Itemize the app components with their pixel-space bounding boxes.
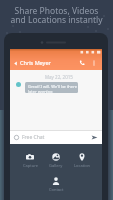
button[interactable]: Back [10, 58, 20, 68]
button[interactable]: Contact [43, 168, 69, 192]
staticText: Chris Meyer [20, 59, 51, 66]
staticText: Great! I will. We'll be there later even… [28, 84, 77, 93]
staticText: Free Chat [22, 134, 45, 141]
staticText: Location [74, 163, 91, 168]
staticText: Capture [23, 163, 38, 168]
staticText: Gallery [49, 163, 63, 168]
button[interactable]: Send [90, 133, 99, 142]
button[interactable]: Gallery [43, 144, 69, 168]
staticText: Contact [49, 187, 64, 192]
button[interactable]: More options [88, 57, 99, 68]
button[interactable]: Location [69, 144, 95, 168]
staticText: May 22, 2015 [45, 74, 73, 80]
other: Emoji [14, 135, 19, 140]
staticText: Share Photos, Videos and Locations insta… [0, 5, 113, 26]
button[interactable]: Call [76, 57, 88, 69]
button[interactable]: Capture [17, 144, 43, 168]
